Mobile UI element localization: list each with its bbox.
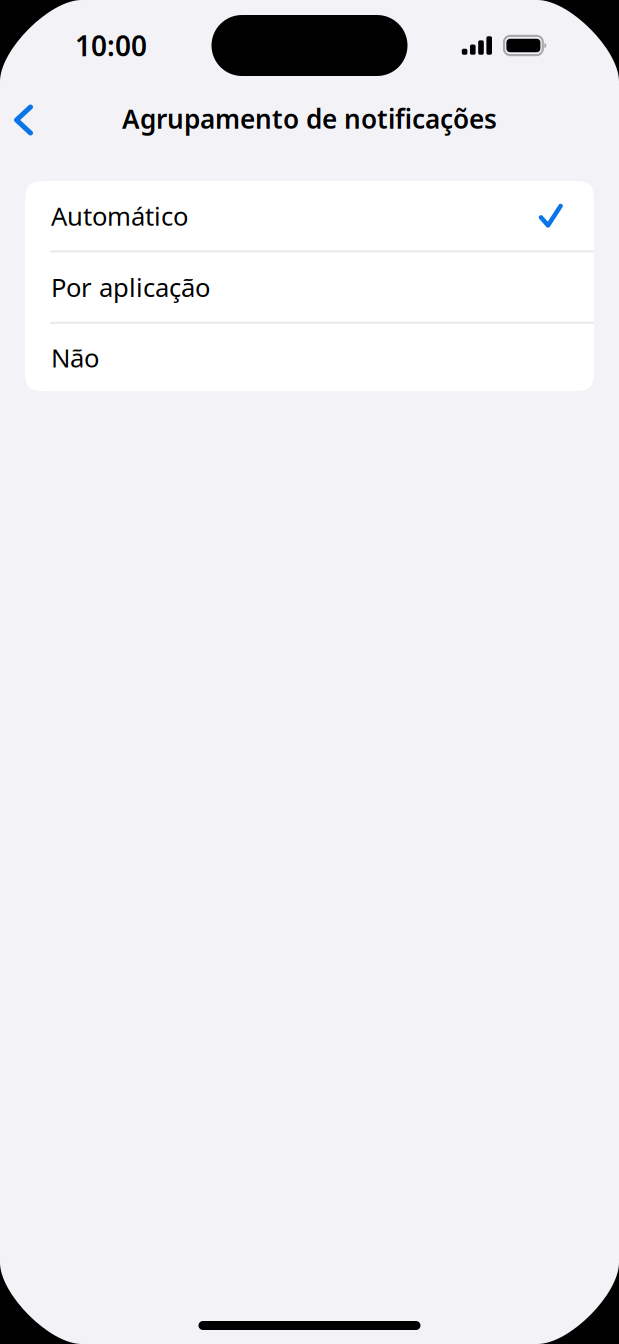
button[interactable]: Automático: [25, 181, 594, 250]
staticText: Não: [51, 340, 99, 374]
button[interactable]: Voltar: [0, 88, 82, 146]
staticText: Automático: [51, 199, 188, 233]
button[interactable]: Não: [25, 324, 594, 391]
button[interactable]: Por aplicação: [25, 252, 594, 322]
staticText: 10:00: [75, 27, 147, 64]
staticText: Por aplicação: [51, 270, 210, 304]
staticText: Agrupamento de notificações: [122, 101, 497, 136]
